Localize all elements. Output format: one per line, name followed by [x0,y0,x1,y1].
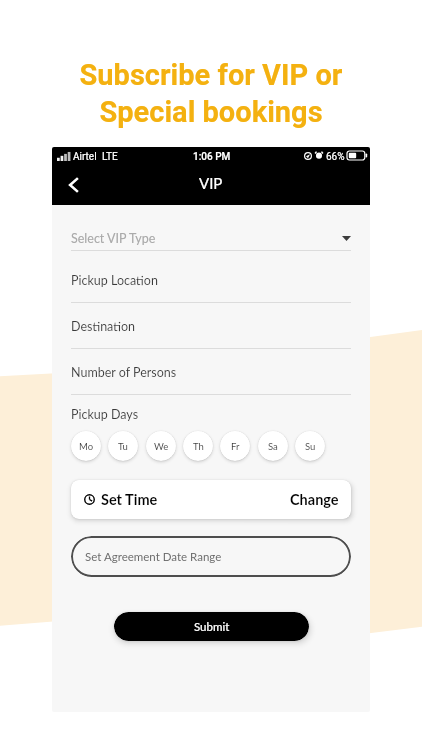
staticText: Airtel [73,151,97,163]
button[interactable]: Th [183,431,213,461]
staticText: Fr [231,441,240,452]
button[interactable]: Su [295,431,325,461]
staticText: VIP [199,174,223,192]
button[interactable]: Back [60,171,88,199]
button[interactable]: Sa [258,431,288,461]
button[interactable]: Submit [114,612,309,641]
staticText: Select VIP Type [71,231,156,246]
button[interactable]: Mo [71,431,101,461]
button[interactable]: Tu [108,431,138,461]
button[interactable]: Set Time [71,480,351,519]
button[interactable]: Fr [220,431,250,461]
button[interactable]: We [146,431,176,461]
button[interactable]: Set Agreement Date Range [71,536,351,577]
staticText: Sa [268,441,278,452]
button[interactable]: Number of Persons [71,349,351,394]
staticText: We [154,441,169,452]
staticText: Tu [118,441,128,452]
staticText: Set Time [101,491,158,508]
staticText: LTE [102,151,118,163]
staticText: 1:06 PM [193,151,231,163]
staticText: Subscribe for VIP or Special bookings [0,58,422,129]
staticText: Change [290,491,339,508]
staticText: 66% [326,151,345,163]
staticText: Destination [71,319,135,334]
button[interactable]: Pickup Location [71,251,351,302]
staticText: Pickup Days [71,407,139,422]
button[interactable]: Select VIP Type [71,222,351,250]
staticText: Su [305,441,316,452]
staticText: Th [193,441,204,452]
staticText: Mo [79,441,94,452]
staticText: Pickup Location [71,273,158,288]
button[interactable]: Destination [71,303,351,348]
staticText: Set Agreement Date Range [85,550,222,564]
staticText: Submit [194,620,230,634]
staticText: Number of Persons [71,365,177,380]
